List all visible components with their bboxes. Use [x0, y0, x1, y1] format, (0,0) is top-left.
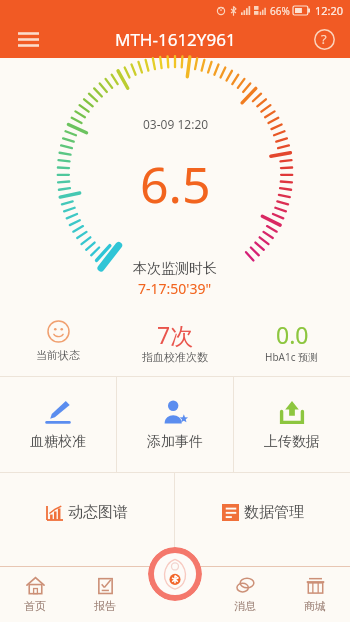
button[interactable]: Help — [308, 23, 340, 55]
button[interactable]: 7次 — [116, 306, 233, 376]
button[interactable]: 报告 — [70, 566, 140, 622]
button[interactable]: 商城 — [280, 566, 350, 622]
button[interactable]: 当前状态 — [0, 306, 116, 376]
button[interactable]: Connect device — [148, 547, 202, 601]
staticText: 动态图谱 — [68, 503, 128, 522]
staticText: 血糖校准 — [30, 433, 86, 451]
staticText: 消息 — [234, 599, 256, 613]
button[interactable]: 首页 — [0, 566, 70, 622]
staticText: 6.5 — [140, 150, 211, 218]
staticText: 数据管理 — [244, 503, 304, 522]
button[interactable]: 消息 — [210, 566, 280, 622]
staticText: 7-17:50'39" — [138, 279, 212, 298]
staticText: 报告 — [94, 599, 116, 613]
button[interactable]: Menu — [10, 21, 46, 57]
button[interactable]: 0.0 — [233, 306, 350, 376]
button[interactable]: 添加事件 — [117, 377, 233, 472]
staticText: 当前状态 — [36, 348, 80, 362]
staticText: ? — [321, 30, 327, 48]
staticText: MTH-1612Y961 — [115, 28, 236, 51]
staticText: 7次 — [157, 319, 194, 350]
staticText: 商城 — [304, 599, 326, 613]
staticText: 66% — [270, 4, 290, 18]
staticText: 首页 — [24, 599, 46, 613]
staticText: 本次监测时长 — [133, 260, 217, 278]
staticText: 添加事件 — [147, 433, 203, 451]
staticText: 0.0 — [276, 319, 309, 350]
button[interactable]: 血糖校准 — [0, 377, 116, 472]
button[interactable]: 上传数据 — [234, 377, 350, 472]
staticText: 03-09 12:20 — [143, 116, 209, 132]
staticText: HbA1c 预测 — [265, 350, 319, 364]
staticText: 上传数据 — [264, 433, 320, 451]
staticText: 指血校准次数 — [142, 350, 208, 364]
button[interactable]: 动态图谱 — [0, 473, 174, 551]
staticText: 12:20 — [315, 3, 344, 18]
button[interactable]: 数据管理 — [175, 473, 350, 551]
